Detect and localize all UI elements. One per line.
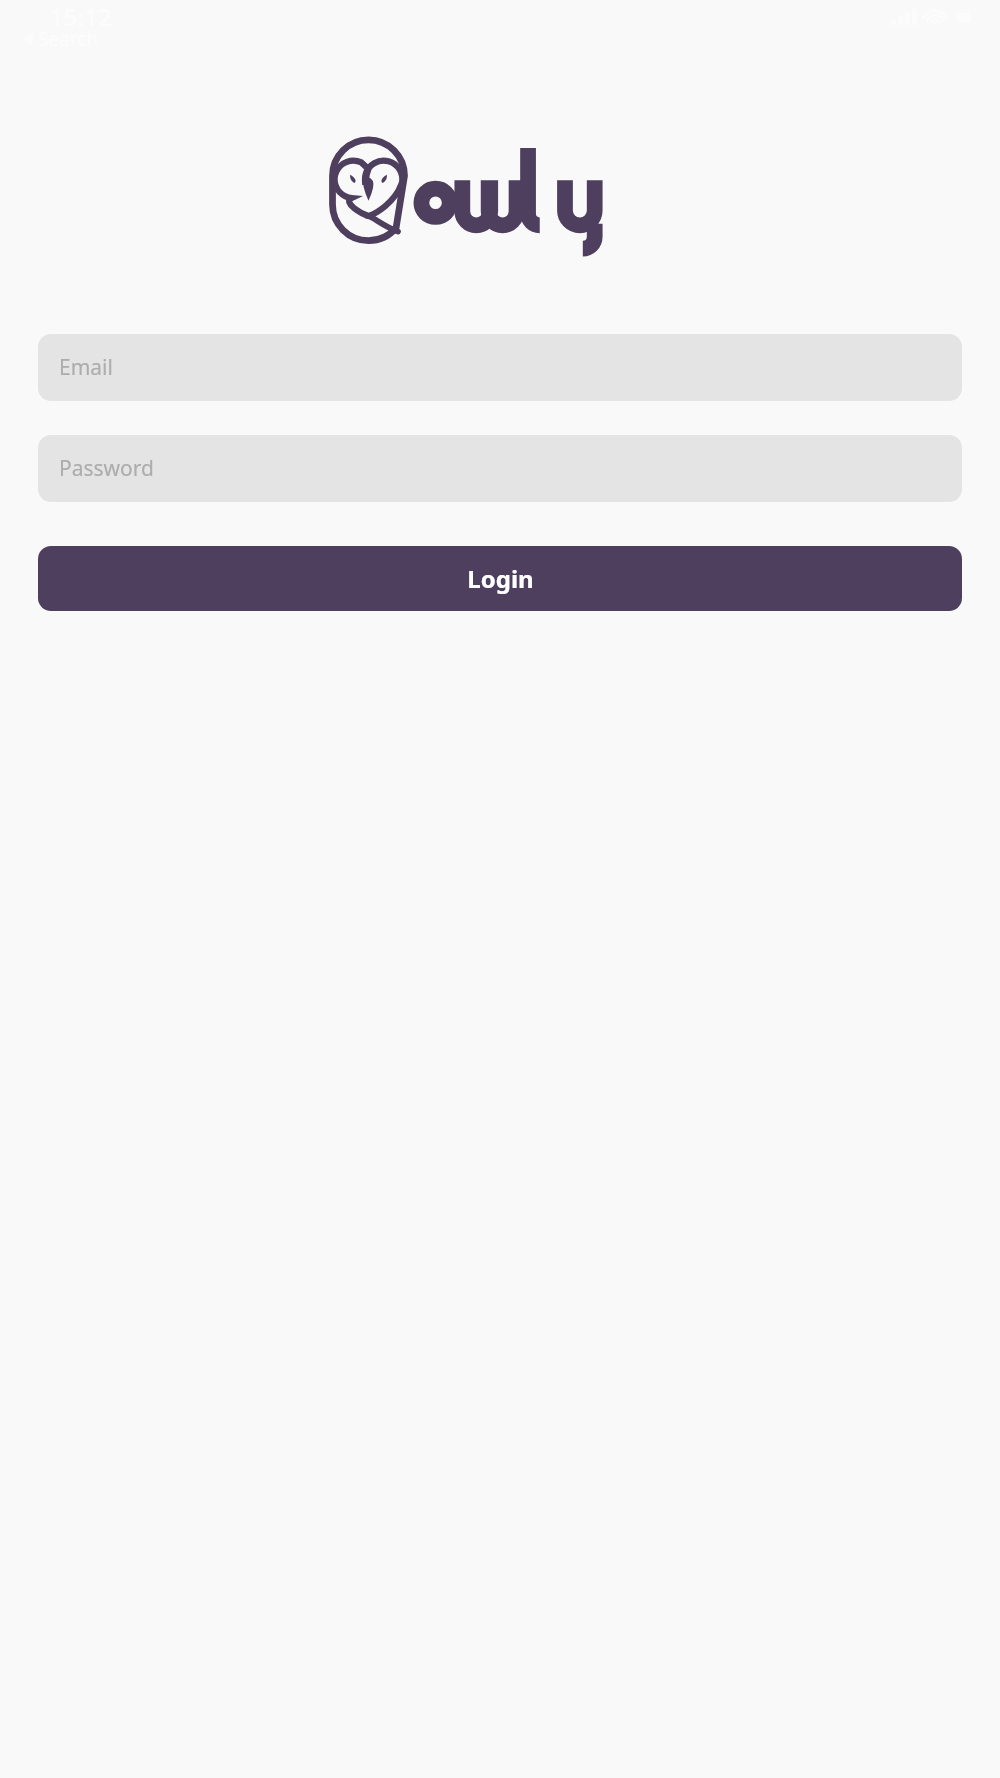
button[interactable]: Email — [38, 334, 962, 401]
staticText: Email — [59, 353, 113, 382]
button[interactable]: Password — [38, 435, 962, 502]
staticText: Password — [59, 454, 154, 483]
staticText: Login — [467, 562, 534, 595]
button[interactable]: Login — [38, 546, 962, 611]
